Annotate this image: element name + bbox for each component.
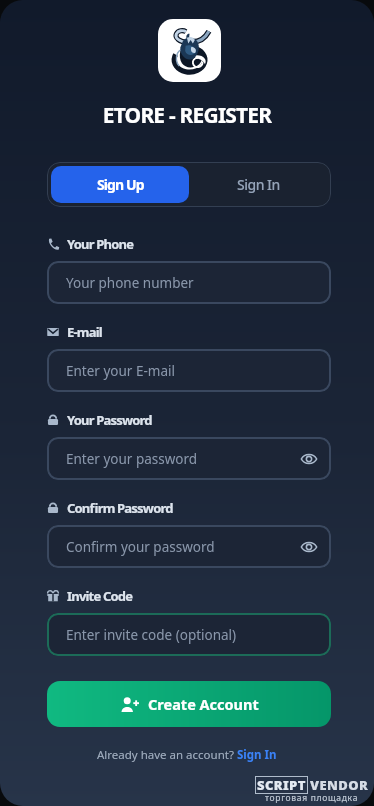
staticText: Your phone number bbox=[66, 274, 194, 292]
button[interactable]: Sign Up bbox=[51, 166, 189, 203]
staticText: Your Phone bbox=[67, 235, 134, 253]
staticText: E-mail bbox=[67, 323, 102, 341]
staticText: Sign Up bbox=[97, 175, 144, 194]
staticText: Already have an account? bbox=[97, 747, 237, 763]
button[interactable]: Create Account bbox=[47, 681, 331, 727]
staticText: Enter invite code (optional) bbox=[66, 626, 237, 644]
staticText: Confirm your password bbox=[66, 538, 215, 556]
button[interactable]: Sign In bbox=[189, 166, 327, 203]
button[interactable]: Show password bbox=[298, 448, 319, 469]
staticText: SCRIPT bbox=[257, 776, 306, 794]
button[interactable]: Enter your E-mail bbox=[47, 349, 331, 392]
button[interactable]: Enter your password bbox=[47, 437, 331, 480]
staticText: Confirm Password bbox=[67, 499, 173, 517]
staticText: Sign In bbox=[237, 747, 277, 763]
button[interactable]: Enter invite code (optional) bbox=[47, 613, 331, 656]
staticText: Sign In bbox=[237, 175, 280, 194]
staticText: ETORE - REGISTER bbox=[0, 101, 374, 130]
staticText: Create Account bbox=[148, 694, 259, 714]
button[interactable]: Already have an account? bbox=[97, 747, 277, 763]
staticText: VENDOR bbox=[310, 776, 369, 794]
staticText: Invite Code bbox=[67, 587, 133, 605]
staticText: торговая площадка bbox=[265, 792, 359, 804]
button[interactable]: Your phone number bbox=[47, 261, 331, 304]
button[interactable]: Show password bbox=[298, 536, 319, 557]
button[interactable]: Confirm your password bbox=[47, 525, 331, 568]
staticText: Enter your E-mail bbox=[66, 362, 175, 380]
staticText: Enter your password bbox=[66, 450, 198, 468]
staticText: Your Password bbox=[67, 411, 152, 429]
